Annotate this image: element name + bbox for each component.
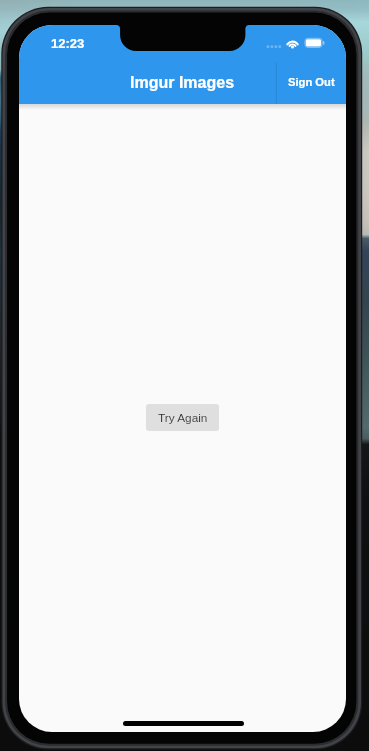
staticText: Sign Out (288, 76, 335, 89)
button[interactable]: Sign Out (277, 62, 345, 103)
button[interactable]: Try Again (146, 404, 219, 431)
staticText: 12:23 (51, 36, 85, 51)
staticText: Try Again (158, 411, 208, 424)
staticText: Imgur Images (130, 74, 235, 92)
